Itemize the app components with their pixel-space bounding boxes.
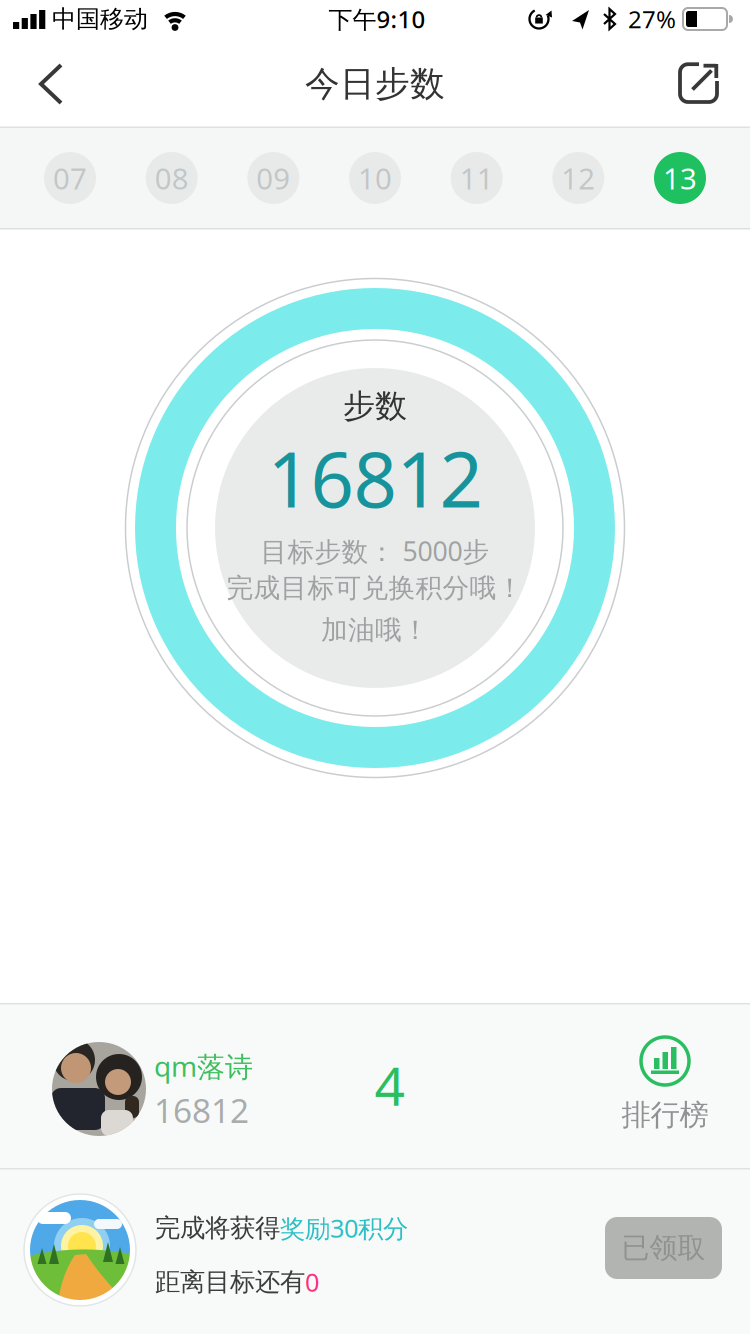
button[interactable]: 08 <box>146 152 198 204</box>
staticText: 09 <box>256 158 290 197</box>
staticText: 4 <box>374 1050 405 1120</box>
button[interactable]: 排行榜 <box>603 1032 727 1142</box>
button[interactable]: 11 <box>451 152 503 204</box>
staticText: 距离目标还有 <box>155 1266 305 1297</box>
staticText: 已领取 <box>621 1231 705 1265</box>
button[interactable]: 10 <box>349 152 401 204</box>
button[interactable]: 07 <box>44 152 96 204</box>
staticText: 完成目标可兑换积分哦！ <box>226 572 523 604</box>
staticText: 08 <box>155 158 189 197</box>
staticText: 16812 <box>154 1088 249 1132</box>
button[interactable]: Share <box>654 39 742 127</box>
button[interactable]: 12 <box>552 152 604 204</box>
staticText: 下午9:10 <box>328 3 425 35</box>
staticText: 排行榜 <box>621 1097 708 1133</box>
staticText: 16812 <box>267 427 482 528</box>
staticText: 中国移动 <box>52 4 148 34</box>
staticText: 今日步数 <box>305 63 445 105</box>
button[interactable]: 09 <box>247 152 299 204</box>
staticText: 13 <box>663 158 697 197</box>
staticText: 0 <box>305 1265 319 1299</box>
staticText: 27% <box>628 3 676 35</box>
staticText: 奖励30积分 <box>280 1211 408 1245</box>
staticText: 步数 <box>343 386 407 426</box>
staticText: qm落诗 <box>154 1047 253 1085</box>
staticText: 11 <box>460 158 494 197</box>
staticText: 12 <box>561 158 595 197</box>
button[interactable]: Back <box>16 40 96 128</box>
staticText: 完成将获得 <box>155 1212 280 1243</box>
staticText: 10 <box>358 158 392 197</box>
button[interactable]: 已领取 <box>605 1217 722 1279</box>
staticText: 07 <box>53 158 87 197</box>
staticText: 加油哦！ <box>321 614 429 646</box>
staticText: 目标步数： 5000步 <box>260 533 489 569</box>
button[interactable]: 13 <box>654 152 706 204</box>
